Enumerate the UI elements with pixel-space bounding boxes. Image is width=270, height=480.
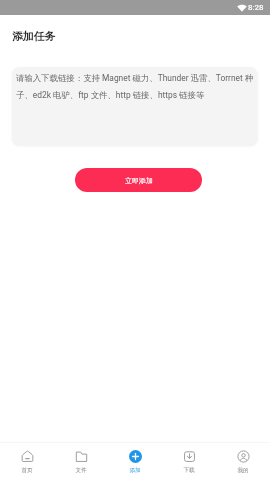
staticText: 添加任务 — [12, 30, 56, 44]
other: Add — [129, 450, 142, 463]
staticText: 8:28 — [248, 3, 264, 12]
staticText: 文件 — [75, 467, 87, 474]
button[interactable]: 我的 — [216, 443, 270, 480]
staticText: 我的 — [237, 467, 249, 474]
button[interactable]: 文件 — [54, 443, 108, 480]
button[interactable]: 首页 — [0, 443, 54, 480]
button[interactable]: 下载 — [162, 443, 216, 480]
staticText: 添加 — [129, 467, 141, 474]
staticText: 首页 — [21, 467, 33, 474]
staticText: 下载 — [183, 467, 195, 474]
button[interactable]: 请输入下载链接：支持 Magnet 磁力、Thunder 迅雷、Torrnet … — [12, 67, 257, 145]
button[interactable]: 立即添加 — [75, 168, 202, 192]
staticText: 立即添加 — [125, 176, 153, 185]
button[interactable]: Add — [108, 443, 162, 480]
staticText: 请输入下载链接：支持 Magnet 磁力、Thunder 迅雷、Torrnet … — [16, 73, 257, 101]
